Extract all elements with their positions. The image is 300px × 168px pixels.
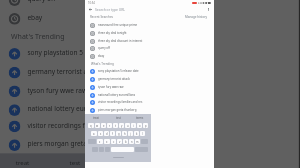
button[interactable]: national lottery euromillions [0, 99, 299, 118]
button[interactable]: b [123, 139, 128, 144]
staticText: Recent Searches [90, 15, 114, 19]
staticText: terms [136, 116, 144, 120]
staticText: f [112, 132, 113, 136]
button[interactable]: v [117, 139, 122, 144]
button[interactable]: sony playstation 5 release date [85, 67, 214, 75]
button[interactable]: ebay [85, 52, 214, 60]
button[interactable]: i [131, 123, 136, 128]
button[interactable]: treat [85, 114, 107, 121]
button[interactable]: n [129, 139, 134, 144]
staticText: ebay [98, 54, 105, 58]
staticText: terms [116, 158, 135, 167]
button[interactable]: o [137, 123, 142, 128]
staticText: y [121, 124, 123, 128]
button[interactable]: national lottery euromillions [85, 91, 214, 99]
button[interactable]: tyson fury wwe raw [0, 81, 299, 99]
staticText: query off [98, 46, 110, 50]
staticText: x [106, 140, 108, 144]
staticText: sony playstation 5 release date [27, 48, 123, 57]
staticText: test [69, 158, 81, 167]
button[interactable]: query off [0, 0, 299, 8]
staticText: query off [27, 0, 55, 4]
staticText: visitor recordings families and res [98, 100, 143, 104]
staticText: j [130, 132, 131, 136]
button[interactable]: p [143, 123, 148, 128]
button[interactable]: d [104, 131, 109, 136]
button[interactable]: treat [0, 153, 48, 168]
button[interactable]: Voice search [205, 6, 211, 12]
staticText: m [136, 140, 139, 144]
button[interactable]: query off [85, 44, 214, 52]
button[interactable]: visitor recordings families and res [85, 98, 214, 106]
button[interactable]: y [119, 123, 124, 128]
button[interactable]: three sky deal tonight [85, 29, 214, 37]
staticText: b [125, 140, 127, 144]
button[interactable]: l [140, 131, 145, 136]
staticText: q [90, 124, 92, 128]
button[interactable]: t [113, 123, 118, 128]
staticText: e [103, 124, 105, 128]
button[interactable]: three sky deal discount in interest [85, 37, 214, 45]
staticText: z [99, 140, 101, 144]
button[interactable]: germany terrorist attack [85, 75, 214, 83]
staticText: v [119, 140, 121, 144]
staticText: germany terrorist attack [98, 77, 130, 81]
staticText: ebay [27, 13, 44, 22]
button[interactable]: g [116, 131, 121, 136]
button[interactable]: ebay [0, 8, 299, 27]
button[interactable]: Back [87, 6, 93, 12]
staticText: n [131, 140, 133, 144]
staticText: sony playstation 5 release date [98, 69, 139, 73]
button[interactable]: j [128, 131, 133, 136]
staticText: tyson fury wwe raw [98, 85, 124, 89]
button[interactable]: e [101, 123, 106, 128]
button[interactable]: s [98, 131, 103, 136]
button[interactable]: k [134, 131, 139, 136]
button[interactable]: u [125, 123, 130, 128]
button[interactable]: sony playstation 5 release date [0, 43, 299, 62]
staticText: c [113, 140, 115, 144]
staticText: visitor recordings families and res [27, 121, 133, 130]
staticText: 10:54 [88, 1, 95, 5]
staticText: national lottery euromillions [98, 93, 136, 97]
staticText: g [118, 132, 120, 136]
button[interactable]: m [135, 139, 140, 144]
staticText: Manage history [185, 15, 207, 19]
button[interactable]: newsround free unique prime [85, 21, 214, 29]
button[interactable]: test [107, 114, 129, 121]
staticText: t [115, 124, 116, 128]
button[interactable]: terms [129, 114, 151, 121]
button[interactable]: piers morgan greta thunberg [0, 135, 299, 153]
staticText: w [96, 124, 99, 128]
button[interactable]: visitor recordings families and res [0, 116, 299, 135]
staticText: germany terrorist attack [27, 67, 102, 76]
button[interactable]: h [122, 131, 127, 136]
button[interactable]: w [95, 123, 100, 128]
button[interactable]: terms [100, 153, 151, 168]
staticText: newsround free unique prime [98, 23, 138, 27]
button[interactable]: f [110, 131, 115, 136]
staticText: i [133, 124, 134, 128]
staticText: h [124, 132, 126, 136]
button[interactable]: germany terrorist attack [0, 62, 299, 81]
button[interactable]: test [48, 153, 100, 168]
button[interactable]: q [88, 123, 94, 128]
staticText: tyson fury wwe raw [27, 85, 88, 95]
staticText: d [106, 132, 108, 136]
button[interactable]: r [107, 123, 112, 128]
button[interactable]: tyson fury wwe raw [85, 83, 214, 91]
button[interactable]: c [111, 139, 116, 144]
staticText: Search or type URL [95, 7, 126, 12]
button[interactable]: z [97, 139, 103, 144]
button[interactable]: a [91, 131, 97, 136]
button[interactable]: piers morgan greta thunberg [85, 106, 214, 114]
button[interactable]: x [104, 139, 110, 144]
staticText: a [93, 132, 95, 136]
